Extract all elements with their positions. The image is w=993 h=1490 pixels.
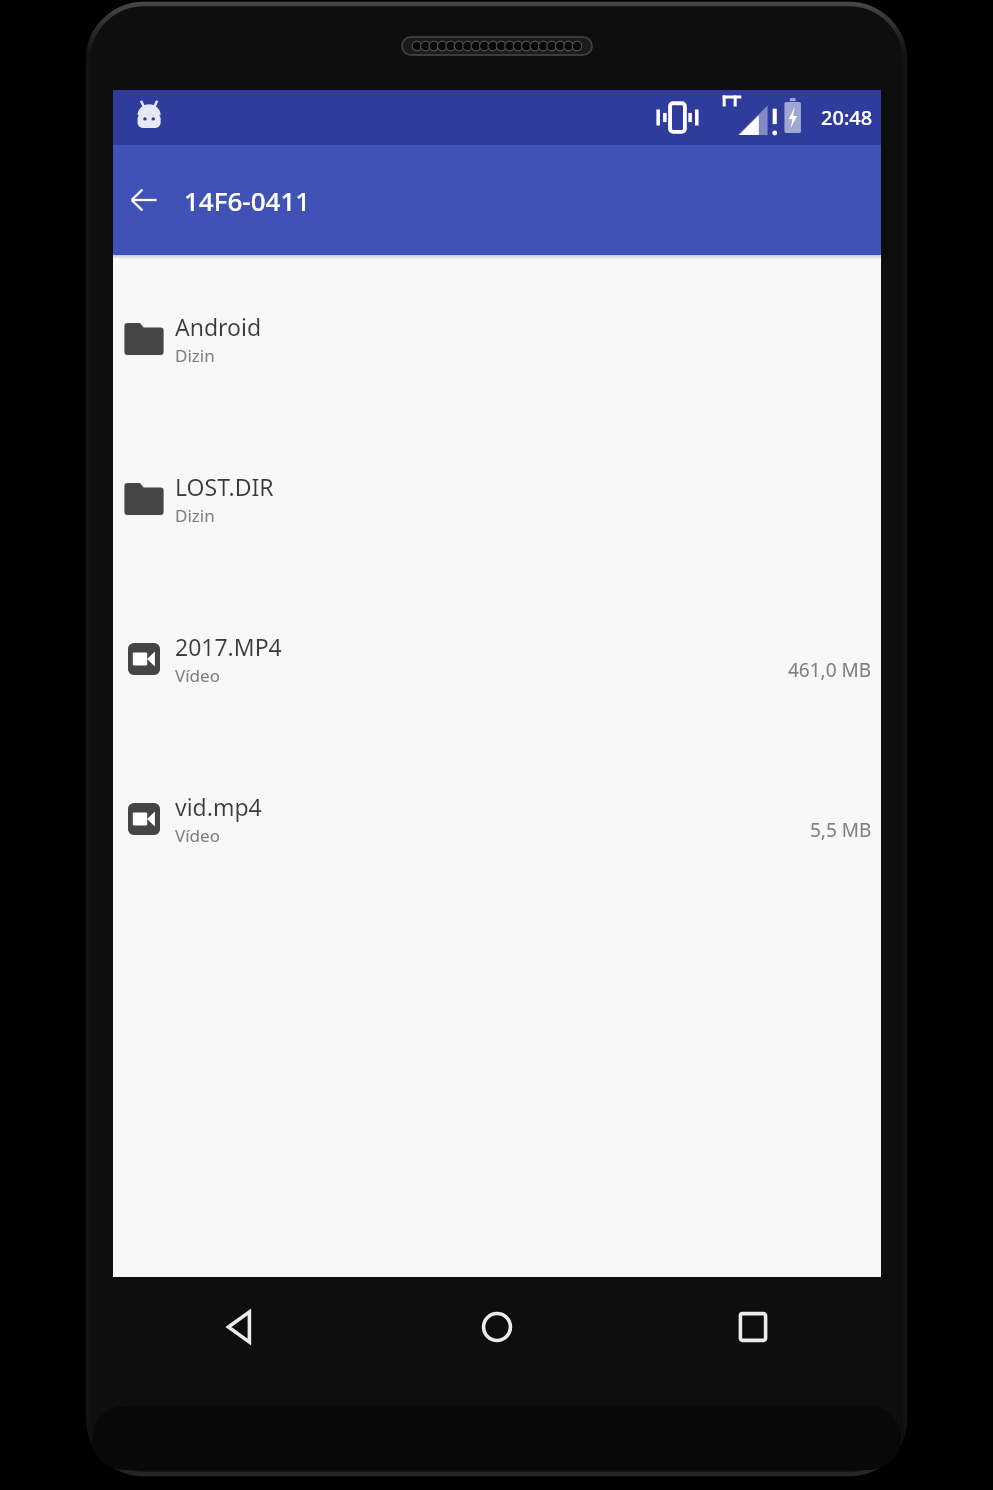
staticText: 14F6-0411: [184, 183, 311, 218]
staticText: Android: [175, 311, 262, 342]
button[interactable]: Recent apps: [625, 1277, 881, 1377]
staticText: 5,5 MB: [810, 817, 872, 843]
staticText: Dizin: [175, 344, 215, 367]
staticText: 20:48: [821, 104, 873, 131]
staticText: Vídeo: [175, 664, 220, 687]
button[interactable]: Android: [113, 259, 881, 419]
button[interactable]: LOST.DIR: [113, 419, 881, 579]
staticText: 2017.MP4: [175, 631, 282, 662]
button[interactable]: Home: [369, 1277, 625, 1377]
staticText: vid.mp4: [175, 791, 262, 822]
staticText: LOST.DIR: [175, 471, 274, 502]
button[interactable]: 2017.MP4: [113, 579, 881, 739]
staticText: Dizin: [175, 504, 215, 527]
button[interactable]: Back: [113, 1277, 369, 1377]
staticText: 461,0 MB: [788, 657, 872, 683]
button[interactable]: vid.mp4: [113, 739, 881, 899]
button[interactable]: Navigate up: [125, 181, 163, 219]
staticText: Vídeo: [175, 824, 220, 847]
